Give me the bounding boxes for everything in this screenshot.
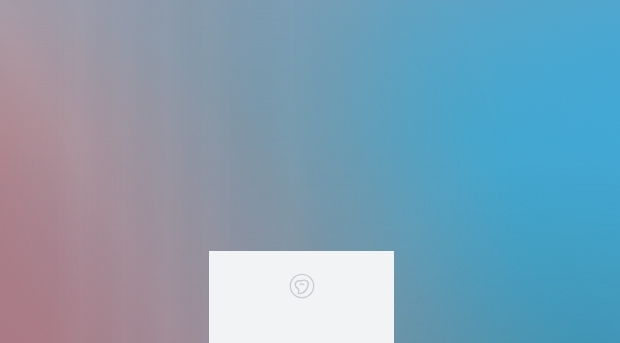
button[interactable]: Sign in with Twitter xyxy=(209,251,394,343)
button[interactable]: Sign in with Twitter xyxy=(289,273,315,299)
